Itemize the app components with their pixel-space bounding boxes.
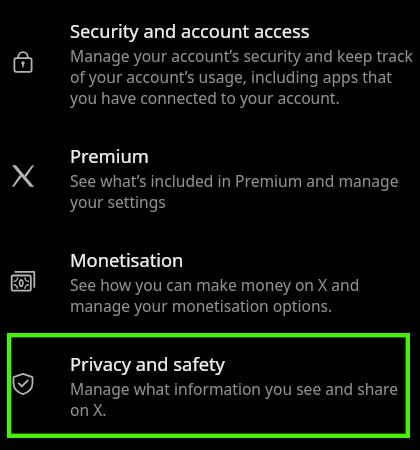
staticText: Security and account access — [70, 20, 310, 43]
button[interactable]: Premium — [0, 127, 420, 231]
staticText: Manage what information you see and shar… — [70, 379, 416, 421]
button[interactable]: Monetisation — [0, 231, 420, 335]
staticText: Privacy and safety — [70, 353, 225, 376]
staticText: See how you can make money on X and mana… — [70, 275, 416, 317]
staticText: Manage your account’s security and keep … — [70, 46, 416, 109]
staticText: Monetisation — [70, 249, 184, 272]
button[interactable]: Security and account access — [0, 2, 420, 127]
button[interactable]: Privacy and safety — [0, 335, 420, 439]
staticText: See what’s included in Premium and manag… — [70, 171, 416, 213]
staticText: Premium — [70, 145, 149, 168]
